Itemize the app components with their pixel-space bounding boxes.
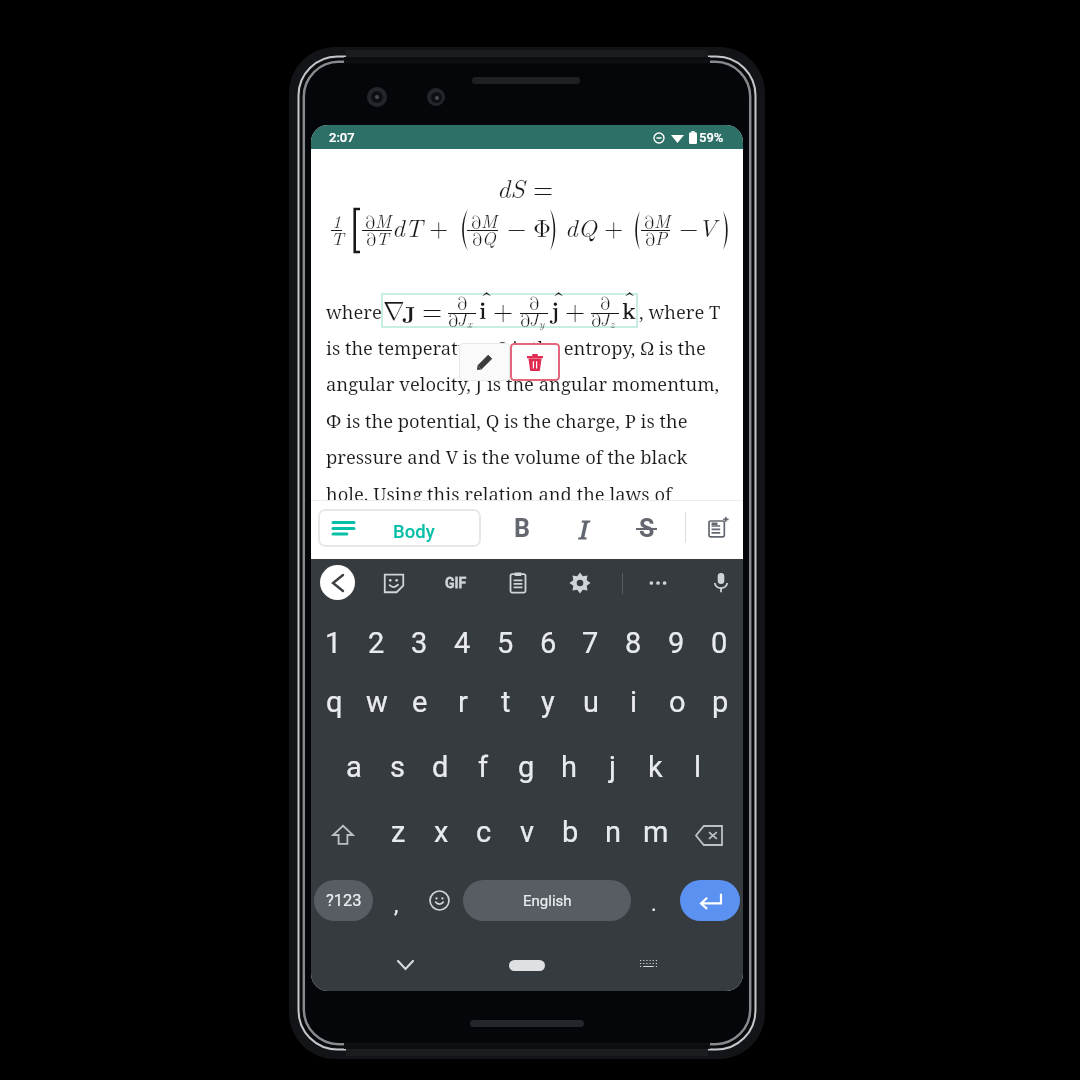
button[interactable]: z [377,809,419,857]
staticText: Φ [533,217,552,242]
staticText: is the temperature, S is the entropy, Ω … [326,335,706,360]
button[interactable]: Strikethrough [626,509,666,547]
button[interactable]: w [356,679,398,727]
button[interactable]: Edit formula [459,343,510,381]
staticText: 2:07 [329,130,355,145]
staticText: r [458,685,468,719]
button[interactable]: o [656,679,698,727]
button[interactable]: 1 [312,620,354,668]
staticText: ∂ [591,312,602,330]
staticText: P [655,225,668,250]
staticText: Q [482,225,496,250]
button[interactable]: a [333,744,375,792]
staticText: T [331,225,344,250]
staticText: B [514,514,530,543]
button[interactable]: Insert note [700,509,736,545]
staticText: J [457,306,467,331]
staticText: b [562,815,579,849]
button[interactable]: g [505,744,547,792]
button[interactable]: Comma [379,880,413,921]
button[interactable]: l [677,744,719,792]
button[interactable]: Period [639,880,669,921]
staticText: 0 [711,626,728,660]
button[interactable]: Hide keyboard [385,955,425,975]
button[interactable]: y [527,679,569,727]
button[interactable]: 9 [655,620,697,668]
staticText: hole. Using this relation and the laws o… [326,481,672,506]
button[interactable]: 3 [398,620,440,668]
staticText: k [648,750,663,784]
staticText: T [376,225,389,250]
button[interactable]: ?123 [314,880,373,921]
button[interactable]: v [506,809,548,857]
button[interactable]: Clipboard [501,565,535,600]
staticText: V [698,209,717,244]
button[interactable]: d [419,744,461,792]
staticText: z [391,815,406,849]
button[interactable]: Voice input [704,565,738,600]
staticText: ˆ [480,282,494,315]
button[interactable]: n [592,809,634,857]
button[interactable]: Backspace [689,815,729,855]
button[interactable]: Switch keyboard [628,955,668,975]
staticText: e [412,685,428,719]
button[interactable]: 7 [569,620,611,668]
button[interactable]: r [442,679,484,727]
button[interactable]: 4 [441,620,483,668]
button[interactable]: p [699,679,741,727]
staticText: u [583,685,599,719]
button[interactable]: j [591,744,633,792]
staticText: M [654,208,671,233]
button[interactable]: e [399,679,441,727]
staticText: M [481,208,498,233]
staticText: ∂ [365,214,376,232]
button[interactable]: More [641,565,675,600]
button[interactable]: Settings [563,565,597,600]
button[interactable]: q [313,679,355,727]
button[interactable]: c [463,809,505,857]
staticText: ∂ [366,231,377,249]
staticText: − [507,217,527,242]
button[interactable]: h [548,744,590,792]
button[interactable]: 8 [612,620,654,668]
staticText: x [467,316,473,332]
staticText: g [518,750,535,784]
staticText: l [694,750,702,784]
staticText: ∂ [644,214,655,232]
button[interactable]: u [570,679,612,727]
button[interactable]: i [613,679,655,727]
button[interactable]: Emoji [419,880,459,921]
button[interactable]: t [485,679,527,727]
button[interactable]: 0 [698,620,740,668]
staticText: dT [392,209,423,244]
button[interactable]: Bold [502,509,542,547]
staticText: ∂ [472,231,483,249]
button[interactable]: Delete formula [510,343,560,381]
button[interactable]: 5 [484,620,526,668]
button[interactable]: Home [507,958,547,972]
staticText: 4 [454,626,471,660]
staticText: q [326,685,343,719]
button[interactable]: 6 [527,620,569,668]
staticText: + [604,217,624,242]
staticText: n [605,815,622,849]
staticText: 1 [325,626,342,660]
button[interactable]: m [635,809,677,857]
button[interactable]: b [549,809,591,857]
button[interactable]: Back [320,565,355,600]
button[interactable]: Enter [680,880,740,921]
button[interactable]: English [463,880,631,921]
staticText: , [394,892,399,918]
button[interactable]: GIF [436,565,476,600]
staticText: s [390,750,405,784]
button[interactable]: x [420,809,462,857]
button[interactable]: Body [318,509,481,547]
button[interactable]: Shift [323,815,363,855]
staticText: 2 [368,626,385,660]
button[interactable]: Stickers [377,565,411,600]
button[interactable]: 2 [355,620,397,668]
button[interactable]: k [634,744,676,792]
button[interactable]: f [462,744,504,792]
button[interactable]: s [376,744,418,792]
button[interactable]: Italic [564,509,604,547]
